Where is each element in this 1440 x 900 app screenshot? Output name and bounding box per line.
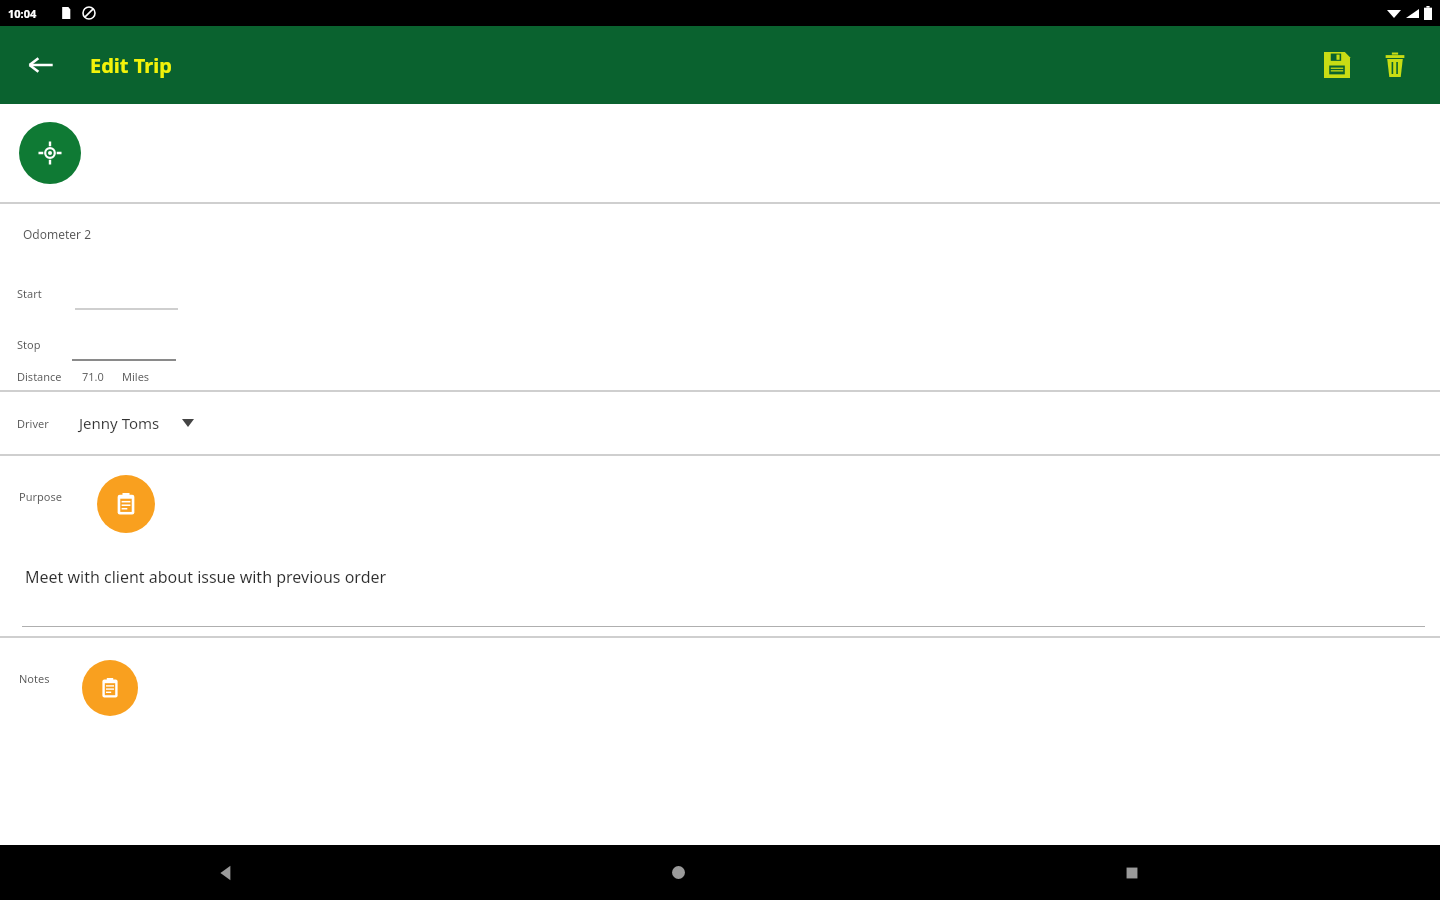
staticText: Edit Trip xyxy=(90,52,172,79)
staticText: Miles xyxy=(122,369,150,384)
button[interactable]: Recent apps xyxy=(905,845,1358,900)
staticText: Stop xyxy=(17,337,41,352)
staticText: Odometer 2 xyxy=(23,226,92,242)
button[interactable]: Home xyxy=(452,845,905,900)
staticText: Distance xyxy=(17,369,62,384)
staticText: Start xyxy=(17,286,42,301)
staticText: 71.0 xyxy=(82,369,104,384)
button[interactable] xyxy=(72,341,176,361)
button[interactable] xyxy=(75,290,178,310)
button[interactable]: Delete xyxy=(1370,40,1420,90)
button[interactable]: Driver xyxy=(0,392,1440,454)
staticText: Jenny Toms xyxy=(79,413,160,433)
staticText: 10:04 xyxy=(8,6,37,21)
button[interactable]: Back xyxy=(0,845,452,900)
button[interactable]: Pick note xyxy=(82,660,138,716)
staticText: Meet with client about issue with previo… xyxy=(25,566,387,588)
staticText: Notes xyxy=(19,671,50,686)
button[interactable]: Pick purpose xyxy=(97,475,155,533)
button[interactable]: Save xyxy=(1312,40,1362,90)
staticText: Driver xyxy=(17,416,49,431)
button[interactable]: Back xyxy=(14,38,68,92)
staticText: Purpose xyxy=(19,489,62,504)
button[interactable]: Get GPS location xyxy=(19,122,81,184)
